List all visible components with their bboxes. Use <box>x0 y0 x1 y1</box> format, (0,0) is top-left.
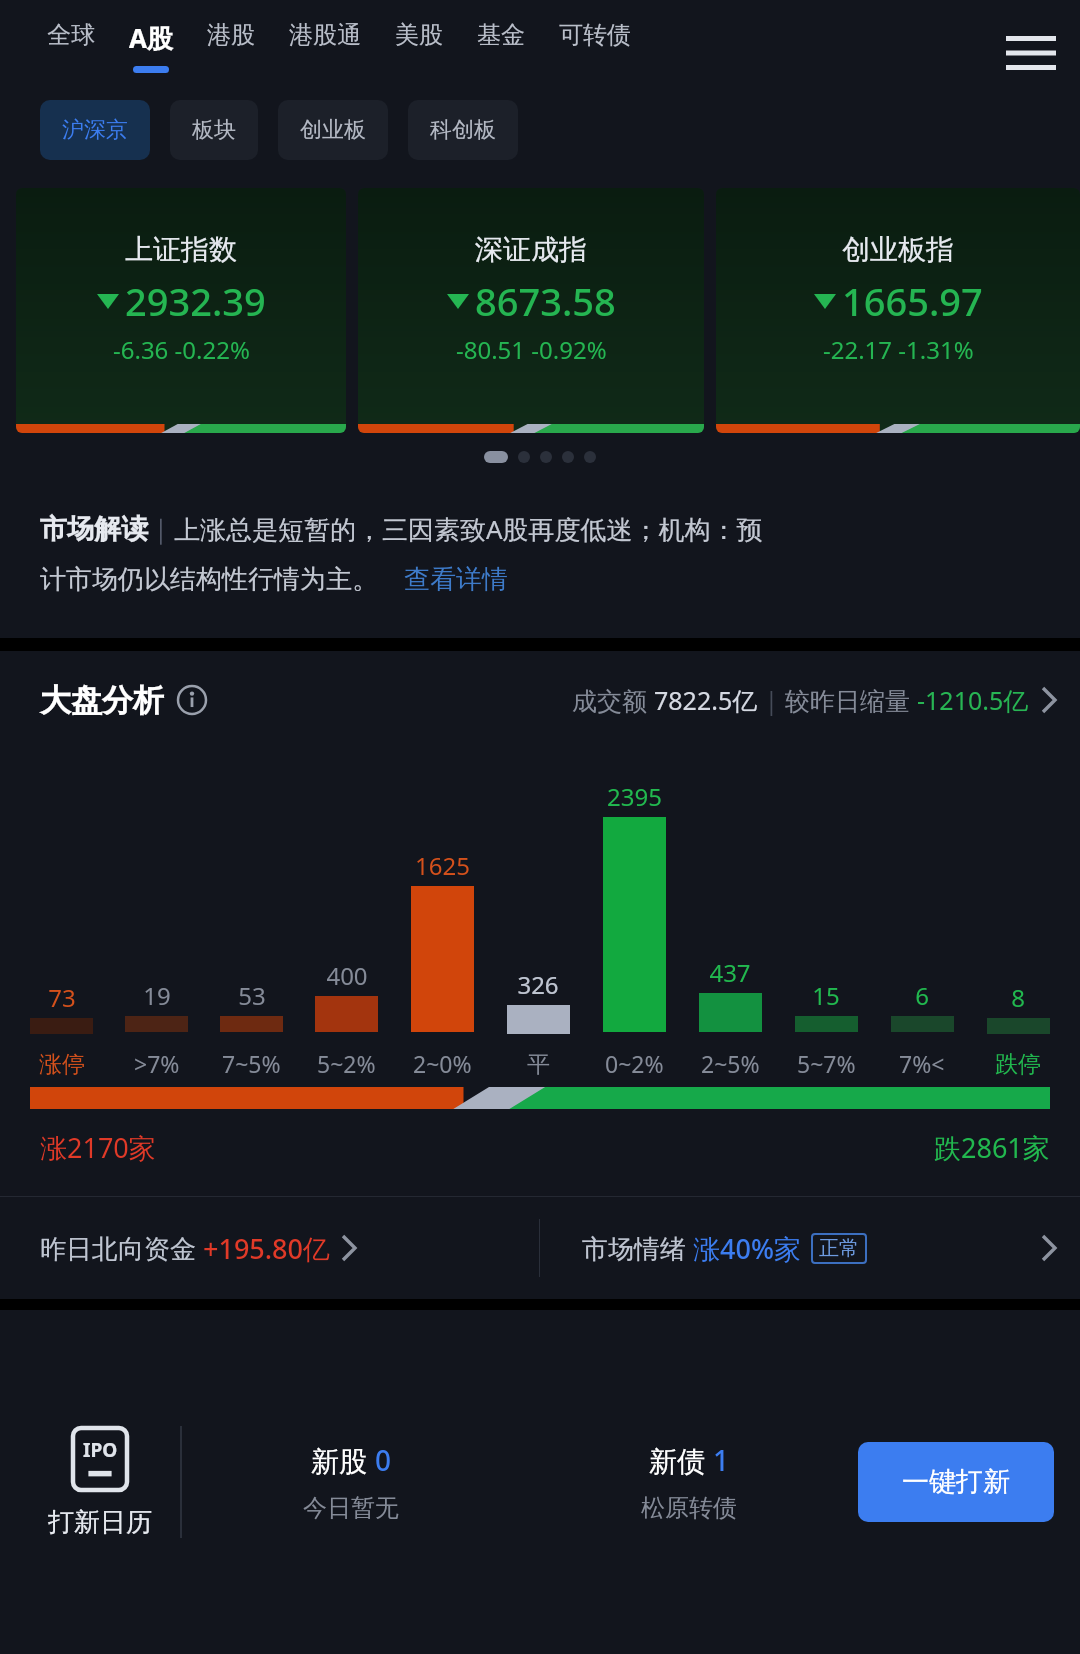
staticText: 上证指数 <box>125 232 237 267</box>
button[interactable]: 港股 <box>190 20 272 67</box>
staticText: 港股 <box>207 20 255 50</box>
staticText: 5~7% <box>797 1048 856 1079</box>
button[interactable]: 港股通 <box>272 20 378 67</box>
button[interactable]: 查看详情 <box>404 563 508 596</box>
staticText: | <box>758 683 785 717</box>
staticText: -1210.5亿 <box>917 683 1029 717</box>
staticText: 7%< <box>899 1048 945 1079</box>
button[interactable]: 大盘分析 <box>0 651 1080 749</box>
staticText: 查看详情 <box>404 563 508 596</box>
staticText: >7% <box>134 1048 180 1079</box>
button[interactable]: 深证成指 <box>358 188 704 433</box>
button[interactable]: Menu <box>996 18 1066 88</box>
staticText: 较昨日缩量 <box>785 683 917 717</box>
button[interactable]: 创业板 <box>278 100 388 160</box>
staticText: 7822.5亿 <box>654 683 758 717</box>
staticText: 15 <box>812 979 840 1012</box>
staticText: 计市场仍以结构性行情为主。 <box>40 563 378 596</box>
button[interactable]: 可转债 <box>542 20 648 67</box>
staticText: 全球 <box>47 20 95 50</box>
staticText: 板块 <box>192 116 236 144</box>
staticText: 6 <box>915 979 929 1012</box>
staticText: 19 <box>143 979 171 1012</box>
staticText: 打新日历 <box>48 1506 152 1539</box>
staticText: 昨日北向资金 <box>40 1230 203 1266</box>
staticText: 今日暂无 <box>303 1493 399 1523</box>
staticText: 326 <box>517 968 559 1001</box>
button[interactable]: 沪深京 <box>40 100 150 160</box>
staticText: 市场解读 <box>40 512 148 546</box>
staticText: 美股 <box>395 20 443 50</box>
staticText: 1625 <box>415 849 470 882</box>
staticText: 2932.39 <box>125 275 266 327</box>
staticText: 2395 <box>607 780 662 813</box>
staticText: 7~5% <box>222 1048 281 1079</box>
staticText: 港股通 <box>289 20 361 50</box>
button[interactable]: 上证指数 <box>16 188 346 433</box>
button[interactable]: IPO <box>48 1426 152 1539</box>
staticText: A股 <box>129 20 173 56</box>
staticText: 松原转债 <box>641 1493 737 1523</box>
staticText: 1 <box>713 1441 730 1479</box>
button[interactable]: 昨日北向资金 <box>0 1197 539 1299</box>
staticText: 上涨总是短暂的，三因素致A股再度低迷；机构：预 <box>174 511 763 547</box>
button[interactable]: 全球 <box>30 20 112 67</box>
button[interactable]: 一键打新 <box>858 1442 1054 1522</box>
staticText: ｜ <box>148 513 174 546</box>
staticText: 成交额 <box>572 683 654 717</box>
button[interactable]: A股 <box>112 20 190 73</box>
button[interactable]: 新股 <box>182 1441 520 1523</box>
staticText: 正常 <box>819 1236 859 1261</box>
staticText: 创业板 <box>300 116 366 144</box>
button[interactable]: 新债 <box>520 1441 858 1523</box>
staticText: 一键打新 <box>902 1465 1010 1499</box>
staticText: 可转债 <box>559 20 631 50</box>
staticText: 跌2861家 <box>934 1129 1050 1166</box>
staticText: 市场情绪 <box>582 1230 693 1266</box>
staticText: 沪深京 <box>62 116 128 144</box>
staticText: 涨40%家 <box>693 1230 801 1267</box>
staticText: IPO <box>83 1437 118 1463</box>
button[interactable]: 市场情绪 <box>540 1197 1080 1299</box>
staticText: 大盘分析 <box>40 681 164 720</box>
staticText: 跌停 <box>995 1050 1041 1079</box>
staticText: 深证成指 <box>475 232 587 267</box>
button[interactable]: 美股 <box>378 20 460 67</box>
staticText: 新股 <box>311 1441 375 1479</box>
staticText: -80.51 -0.92% <box>456 333 607 366</box>
staticText: 1665.97 <box>842 275 983 327</box>
staticText: 科创板 <box>430 116 496 144</box>
staticText: 5~2% <box>317 1048 376 1079</box>
staticText: 53 <box>238 979 266 1012</box>
staticText: 涨停 <box>39 1050 85 1079</box>
staticText: 新债 <box>649 1441 713 1479</box>
button[interactable]: 科创板 <box>408 100 518 160</box>
staticText: 400 <box>326 959 368 992</box>
staticText: 2~0% <box>413 1048 472 1079</box>
staticText: 涨2170家 <box>40 1129 156 1166</box>
staticText: 创业板指 <box>842 232 954 267</box>
staticText: -22.17 -1.31% <box>823 333 974 366</box>
button[interactable]: 板块 <box>170 100 258 160</box>
staticText: 平 <box>527 1050 550 1079</box>
staticText: 2~5% <box>701 1048 760 1079</box>
button[interactable]: 基金 <box>460 20 542 67</box>
staticText: 8 <box>1011 981 1025 1014</box>
staticText: 0 <box>375 1441 392 1479</box>
staticText: 437 <box>709 956 751 989</box>
staticText: +195.80亿 <box>203 1230 331 1267</box>
staticText: -6.36 -0.22% <box>113 333 250 366</box>
button[interactable]: 创业板指 <box>716 188 1080 433</box>
staticText: 0~2% <box>605 1048 664 1079</box>
staticText: 基金 <box>477 20 525 50</box>
staticText: 8673.58 <box>475 275 616 327</box>
staticText: 73 <box>48 981 76 1014</box>
